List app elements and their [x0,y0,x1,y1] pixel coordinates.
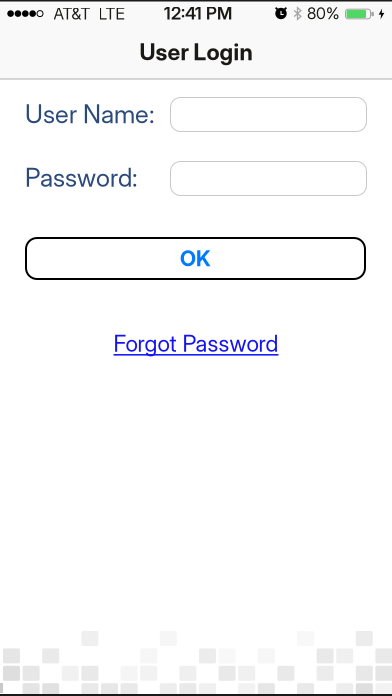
button[interactable]: User Name [170,97,367,132]
staticText: User Login [139,39,252,65]
button[interactable]: OK [25,237,366,280]
button[interactable]: Forgot Password [113,330,278,357]
staticText: Password: [25,163,138,192]
staticText: 12:41 PM [164,3,232,23]
staticText: LTE [98,4,124,23]
staticText: Forgot Password [113,330,278,357]
staticText: User Name: [25,99,155,129]
staticText: 80% [307,4,340,23]
staticText: AT&T [53,4,90,23]
staticText: OK [180,246,211,271]
button[interactable]: Password [170,161,367,196]
